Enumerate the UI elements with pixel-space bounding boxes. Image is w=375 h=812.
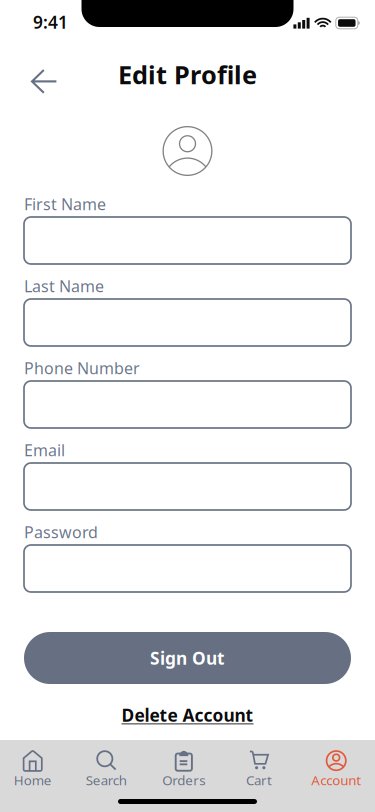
- staticText: Last Name: [24, 275, 104, 297]
- button[interactable]: Home: [0, 746, 65, 792]
- button[interactable]: Back: [24, 55, 64, 94]
- button[interactable]: Cart: [221, 746, 297, 792]
- staticText: Phone Number: [24, 357, 140, 379]
- staticText: Sign Out: [150, 646, 225, 669]
- button[interactable]: Account: [297, 746, 375, 792]
- staticText: Home: [14, 771, 52, 789]
- staticText: Cart: [246, 771, 272, 789]
- staticText: Email: [24, 439, 65, 461]
- staticText: Orders: [162, 771, 205, 789]
- staticText: Password: [24, 521, 98, 543]
- staticText: Delete Account: [121, 703, 253, 726]
- button[interactable]: Delete Account: [115, 703, 259, 727]
- staticText: Search: [86, 771, 127, 789]
- button[interactable]: Orders: [147, 746, 221, 792]
- staticText: 9:41: [33, 10, 68, 33]
- button[interactable]: Sign Out: [24, 632, 351, 684]
- button[interactable]: Search: [65, 746, 147, 792]
- staticText: Account: [311, 771, 361, 789]
- staticText: First Name: [24, 193, 106, 215]
- staticText: Edit Profile: [118, 58, 257, 91]
